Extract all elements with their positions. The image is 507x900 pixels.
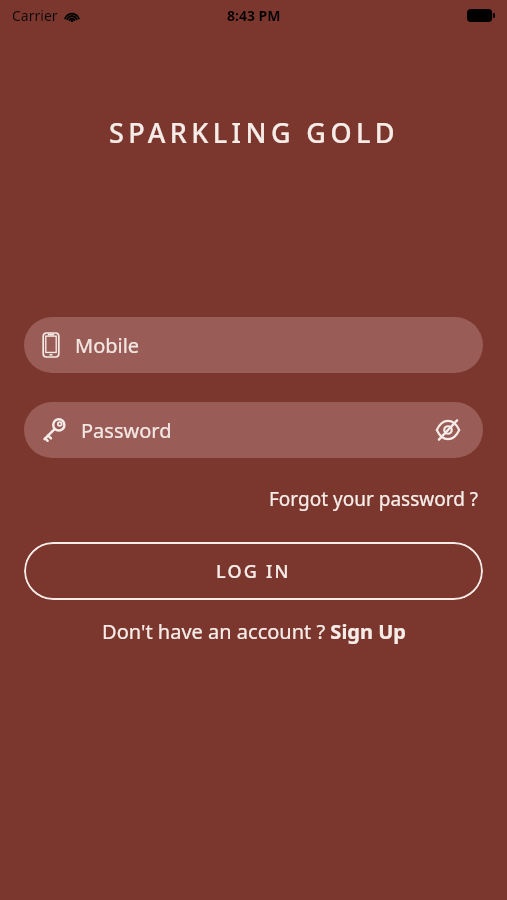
staticText: Carrier — [12, 6, 58, 25]
staticText: Don't have an account ? Sign Up — [102, 618, 406, 645]
staticText: 8:43 PM — [227, 6, 281, 25]
staticText: Password — [81, 417, 172, 444]
button[interactable]: Show password — [430, 412, 466, 448]
button[interactable]: Don't have an account ? Sign Up — [96, 614, 412, 649]
staticText: SPARKLING GOLD — [109, 114, 399, 151]
staticText: Mobile — [75, 332, 140, 359]
button[interactable]: Password — [24, 402, 483, 458]
staticText: Forgot your password ? — [269, 486, 479, 512]
button[interactable]: Forgot your password ? — [265, 482, 483, 516]
staticText: LOG IN — [216, 559, 291, 584]
button[interactable]: LOG IN — [24, 542, 483, 600]
button[interactable]: Mobile — [24, 317, 483, 373]
